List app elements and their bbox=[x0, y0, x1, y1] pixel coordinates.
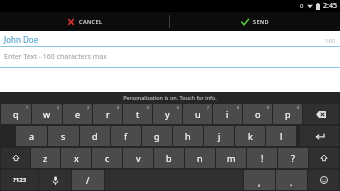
staticText: ? bbox=[291, 152, 295, 164]
staticText: r bbox=[106, 108, 110, 120]
staticText: h bbox=[185, 130, 191, 142]
button[interactable]: 8 bbox=[213, 104, 242, 124]
staticText: a bbox=[29, 130, 35, 142]
button[interactable]: Voice input bbox=[39, 170, 71, 190]
staticText: q bbox=[13, 108, 19, 120]
button[interactable]: CANCEL bbox=[0, 12, 169, 31]
staticText: s bbox=[61, 130, 66, 142]
staticText: g bbox=[154, 130, 160, 142]
staticText: . bbox=[290, 176, 293, 188]
button[interactable]: , bbox=[244, 170, 275, 190]
staticText: y bbox=[165, 108, 170, 120]
staticText: k bbox=[248, 130, 253, 142]
button[interactable]: Personalization is on. Touch for info. bbox=[0, 92, 340, 103]
staticText: 0 bbox=[297, 105, 300, 110]
button[interactable]: SEND bbox=[170, 12, 340, 31]
button[interactable]: 9 bbox=[243, 104, 272, 124]
button[interactable]: John Doe bbox=[0, 31, 340, 47]
staticText: CANCEL bbox=[79, 18, 103, 25]
button[interactable]: f bbox=[111, 126, 141, 146]
button[interactable]: m bbox=[216, 148, 246, 168]
staticText: j bbox=[218, 130, 221, 142]
staticText: z bbox=[43, 152, 48, 164]
button[interactable]: 3 bbox=[63, 104, 92, 124]
button[interactable]: Enter Text - 160 characters max bbox=[0, 47, 340, 68]
staticText: 3 bbox=[87, 105, 90, 110]
staticText: e bbox=[75, 108, 81, 120]
button[interactable]: b bbox=[154, 148, 184, 168]
staticText: 9 bbox=[267, 105, 270, 110]
button[interactable]: Emoji bbox=[308, 170, 339, 190]
staticText: p bbox=[285, 108, 291, 120]
button[interactable]: v bbox=[123, 148, 153, 168]
button[interactable]: k bbox=[235, 126, 265, 146]
staticText: o bbox=[255, 108, 261, 120]
staticText: 8 bbox=[237, 105, 240, 110]
staticText: w bbox=[43, 108, 51, 120]
button[interactable]: Shift bbox=[1, 148, 30, 168]
staticText: 6 bbox=[177, 105, 180, 110]
button[interactable]: 2 bbox=[32, 104, 62, 124]
button[interactable]: Backspace bbox=[303, 104, 339, 124]
staticText: d bbox=[92, 130, 98, 142]
button[interactable]: ! bbox=[247, 148, 277, 168]
staticText: l bbox=[280, 130, 283, 142]
button[interactable]: ?123 bbox=[1, 170, 38, 190]
staticText: c bbox=[105, 152, 110, 164]
button[interactable]: 6 bbox=[153, 104, 182, 124]
button[interactable]: x bbox=[61, 148, 91, 168]
button[interactable]: 1 bbox=[1, 104, 31, 124]
staticText: f bbox=[124, 130, 128, 142]
button[interactable]: d bbox=[80, 126, 110, 146]
staticText: 160 bbox=[325, 37, 336, 45]
staticText: t bbox=[136, 108, 140, 120]
staticText: m bbox=[227, 152, 236, 164]
button[interactable]: l bbox=[266, 126, 296, 146]
staticText: i bbox=[226, 108, 229, 120]
button[interactable]: ? bbox=[278, 148, 308, 168]
button[interactable]: c bbox=[92, 148, 122, 168]
button[interactable]: n bbox=[185, 148, 215, 168]
button[interactable]: . bbox=[276, 170, 307, 190]
button[interactable]: / bbox=[72, 170, 104, 190]
button[interactable]: j bbox=[204, 126, 234, 146]
button[interactable]: s bbox=[48, 126, 79, 146]
button[interactable]: g bbox=[142, 126, 172, 146]
button[interactable]: Shift bbox=[309, 148, 339, 168]
staticText: Enter Text - 160 characters max bbox=[4, 52, 107, 62]
staticText: 7 bbox=[207, 105, 210, 110]
staticText: v bbox=[136, 152, 141, 164]
staticText: 1 bbox=[26, 105, 29, 110]
button[interactable]: 5 bbox=[123, 104, 152, 124]
staticText: n bbox=[197, 152, 203, 164]
staticText: 4 bbox=[117, 105, 120, 110]
staticText: , bbox=[258, 176, 261, 188]
button[interactable]: a bbox=[16, 126, 47, 146]
button[interactable]: 4 bbox=[93, 104, 122, 124]
button[interactable]: Enter bbox=[300, 126, 339, 146]
staticText: ! bbox=[261, 152, 264, 164]
staticText: 0 bbox=[300, 2, 304, 10]
staticText: ?123 bbox=[13, 176, 27, 184]
button[interactable]: h bbox=[173, 126, 203, 146]
button[interactable]: z bbox=[31, 148, 60, 168]
button[interactable]: 7 bbox=[183, 104, 212, 124]
staticText: u bbox=[195, 108, 201, 120]
staticText: John Doe bbox=[4, 34, 325, 45]
staticText: 2:45 bbox=[323, 1, 337, 11]
staticText: x bbox=[74, 152, 79, 164]
staticText: Personalization is on. Touch for info. bbox=[123, 94, 217, 101]
staticText: b bbox=[166, 152, 172, 164]
staticText: SEND bbox=[253, 18, 269, 25]
button[interactable]: 0 bbox=[273, 104, 302, 124]
staticText: 5 bbox=[147, 105, 150, 110]
staticText: / bbox=[86, 174, 90, 186]
staticText: 2 bbox=[57, 105, 60, 110]
